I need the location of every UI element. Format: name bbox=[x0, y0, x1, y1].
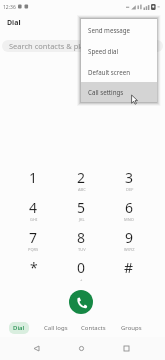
button[interactable]: # bbox=[105, 253, 153, 283]
staticText: 1 bbox=[29, 168, 38, 187]
button[interactable]: * bbox=[10, 253, 57, 283]
staticText: Search contacts & places bbox=[9, 41, 96, 51]
button[interactable]: 4 bbox=[10, 193, 57, 223]
staticText: 2 bbox=[77, 168, 86, 187]
staticText: Contacts bbox=[81, 324, 106, 332]
button[interactable]: Search contacts & places bbox=[2, 40, 163, 52]
button[interactable]: 3 bbox=[105, 163, 153, 193]
staticText: 8 bbox=[77, 228, 86, 247]
button[interactable]: Back bbox=[14, 337, 59, 360]
staticText: # bbox=[124, 258, 134, 277]
staticText: 0 bbox=[77, 258, 86, 277]
button[interactable]: Contacts bbox=[74, 320, 112, 336]
button[interactable]: 6 bbox=[105, 193, 153, 223]
staticText: 5 bbox=[77, 198, 86, 217]
button[interactable]: Home bbox=[59, 337, 104, 360]
button[interactable]: Send message bbox=[81, 19, 157, 40]
button[interactable]: Default screen bbox=[81, 61, 157, 82]
staticText: JKL bbox=[79, 217, 85, 222]
staticText: Send message bbox=[88, 26, 131, 34]
staticText: 3 bbox=[125, 168, 134, 187]
staticText: WXYZ bbox=[124, 247, 135, 252]
staticText: 9 bbox=[125, 228, 134, 247]
staticText: GHI bbox=[30, 217, 38, 222]
staticText: + bbox=[80, 277, 83, 282]
staticText: 7 bbox=[29, 228, 38, 247]
staticText: * bbox=[30, 258, 38, 277]
button[interactable]: Dial bbox=[0, 320, 37, 336]
button[interactable]: 0 bbox=[57, 253, 105, 283]
button[interactable]: 9 bbox=[105, 223, 153, 253]
staticText: ABC bbox=[78, 187, 86, 192]
staticText: Groups bbox=[121, 324, 142, 332]
staticText: Default screen bbox=[88, 68, 131, 76]
button[interactable]: Call settings bbox=[81, 82, 157, 102]
button[interactable]: 7 bbox=[10, 223, 57, 253]
staticText: Call logs bbox=[44, 324, 68, 332]
staticText: Dial bbox=[13, 324, 25, 332]
staticText: PQRS bbox=[28, 247, 39, 252]
button[interactable]: Call bbox=[69, 290, 93, 314]
button[interactable]: 2 bbox=[57, 163, 105, 193]
staticText: 6 bbox=[125, 198, 134, 217]
button[interactable]: 5 bbox=[57, 193, 105, 223]
staticText: Call settings bbox=[88, 88, 124, 96]
button[interactable]: 8 bbox=[57, 223, 105, 253]
staticText: 4 bbox=[29, 198, 38, 217]
button[interactable]: 1 bbox=[10, 163, 57, 193]
button[interactable]: Speed dial bbox=[81, 40, 157, 61]
button[interactable]: Groups bbox=[112, 320, 150, 336]
staticText: Dial bbox=[7, 18, 21, 28]
staticText: 12:36 bbox=[3, 4, 16, 11]
staticText: TUV bbox=[78, 247, 86, 252]
staticText: Speed dial bbox=[88, 47, 119, 55]
staticText: MNO bbox=[124, 217, 134, 222]
button[interactable]: Call logs bbox=[37, 320, 74, 336]
button[interactable]: Recents bbox=[104, 337, 149, 360]
staticText: DEF bbox=[126, 187, 134, 192]
